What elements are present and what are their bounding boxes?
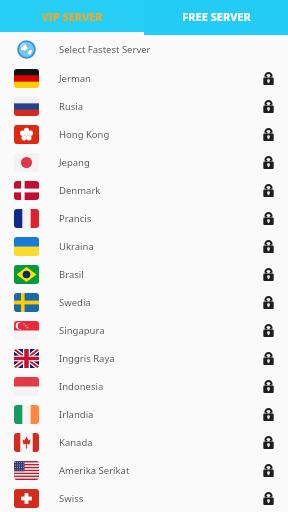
button[interactable]: Locked [254,176,282,204]
button[interactable]: Denmark [0,176,288,204]
staticText: Hong Kong [59,128,110,141]
staticText: Jepang [59,156,90,169]
button[interactable]: Select Fastest Server [0,35,288,64]
button[interactable]: Amerika Serikat [0,456,288,484]
button[interactable]: Locked [254,428,282,456]
button[interactable]: Locked [254,120,282,148]
staticText: Swedia [59,296,91,309]
staticText: VIP SERVER [41,9,103,24]
button[interactable]: Jepang [0,148,288,176]
staticText: Jerman [59,72,91,85]
button[interactable]: Jerman [0,64,288,92]
staticText: Rusia [59,100,84,113]
staticText: Singapura [59,324,105,337]
button[interactable]: FREE SERVER [144,0,288,35]
button[interactable]: Inggris Raya [0,344,288,372]
button[interactable]: Singapura [0,316,288,344]
button[interactable]: Locked [254,232,282,260]
button[interactable]: Ukraina [0,232,288,260]
staticText: Indonesia [59,380,104,393]
button[interactable]: Locked [254,260,282,288]
button[interactable]: Locked [254,64,282,92]
button[interactable]: Locked [254,148,282,176]
staticText: Brasil [59,268,84,281]
button[interactable]: Locked [254,204,282,232]
button[interactable]: Rusia [0,92,288,120]
button[interactable]: Locked [254,92,282,120]
staticText: Swiss [59,492,84,505]
staticText: Ukraina [59,240,94,253]
button[interactable]: Prancis [0,204,288,232]
staticText: Kanada [59,436,93,449]
staticText: FREE SERVER [182,9,251,24]
staticText: Amerika Serikat [59,464,130,477]
staticText: Select Fastest Server [59,43,151,56]
staticText: Inggris Raya [59,352,115,365]
staticText: Denmark [59,184,101,197]
button[interactable]: Swiss [0,484,288,512]
button[interactable]: Locked [254,484,282,512]
button[interactable]: Brasil [0,260,288,288]
staticText: Prancis [59,212,92,225]
button[interactable]: Locked [254,372,282,400]
staticText: Irlandia [59,408,94,421]
button[interactable]: Indonesia [0,372,288,400]
button[interactable]: Irlandia [0,400,288,428]
button[interactable]: Swedia [0,288,288,316]
button[interactable]: VIP SERVER [0,0,144,35]
button[interactable]: Locked [254,316,282,344]
button[interactable]: Locked [254,456,282,484]
button[interactable]: Hong Kong [0,120,288,148]
button[interactable]: Locked [254,344,282,372]
button[interactable]: Kanada [0,428,288,456]
button[interactable]: Locked [254,400,282,428]
button[interactable]: Locked [254,288,282,316]
